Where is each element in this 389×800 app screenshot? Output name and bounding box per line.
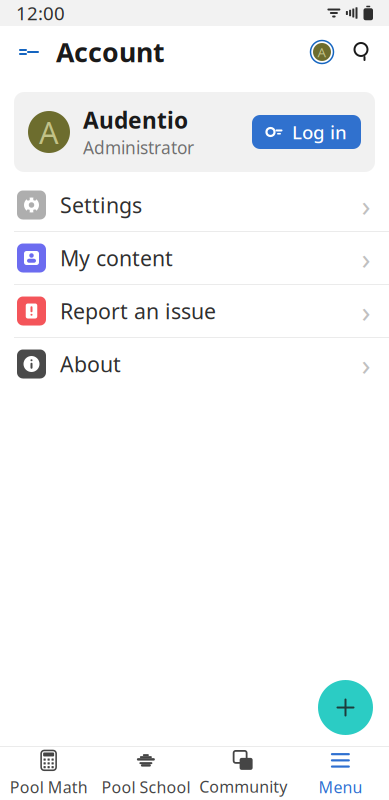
- staticText: Report an issue: [60, 297, 216, 325]
- staticText: Menu: [318, 776, 362, 798]
- button[interactable]: Report an issue: [0, 285, 389, 337]
- button[interactable]: Add: [318, 680, 373, 735]
- staticText: ›: [361, 238, 370, 277]
- staticText: Pool Math: [10, 776, 88, 798]
- staticText: Settings: [60, 191, 142, 219]
- button[interactable]: Pool Math: [0, 747, 97, 800]
- button[interactable]: Back: [8, 27, 50, 77]
- staticText: About: [60, 350, 121, 378]
- staticText: A: [39, 112, 59, 152]
- staticText: ›: [361, 291, 370, 330]
- staticText: My content: [60, 244, 173, 272]
- staticText: Audentio: [83, 105, 188, 135]
- staticText: Administrator: [83, 136, 194, 159]
- button[interactable]: Pool School: [97, 747, 194, 800]
- staticText: 12:00: [16, 1, 65, 25]
- button[interactable]: Settings: [0, 179, 389, 231]
- staticText: A: [317, 43, 326, 61]
- button[interactable]: My content: [0, 232, 389, 284]
- button[interactable]: Community: [194, 747, 292, 800]
- staticText: Account: [56, 34, 165, 70]
- button[interactable]: Log in: [252, 115, 361, 149]
- button[interactable]: Search: [341, 27, 381, 77]
- staticText: Log in: [292, 120, 347, 144]
- button[interactable]: Menu: [292, 747, 389, 800]
- staticText: Pool School: [101, 776, 190, 798]
- button[interactable]: Profile: [303, 27, 341, 77]
- staticText: ›: [361, 185, 370, 224]
- staticText: Community: [199, 776, 287, 797]
- button[interactable]: About: [0, 338, 389, 390]
- staticText: ›: [361, 344, 370, 383]
